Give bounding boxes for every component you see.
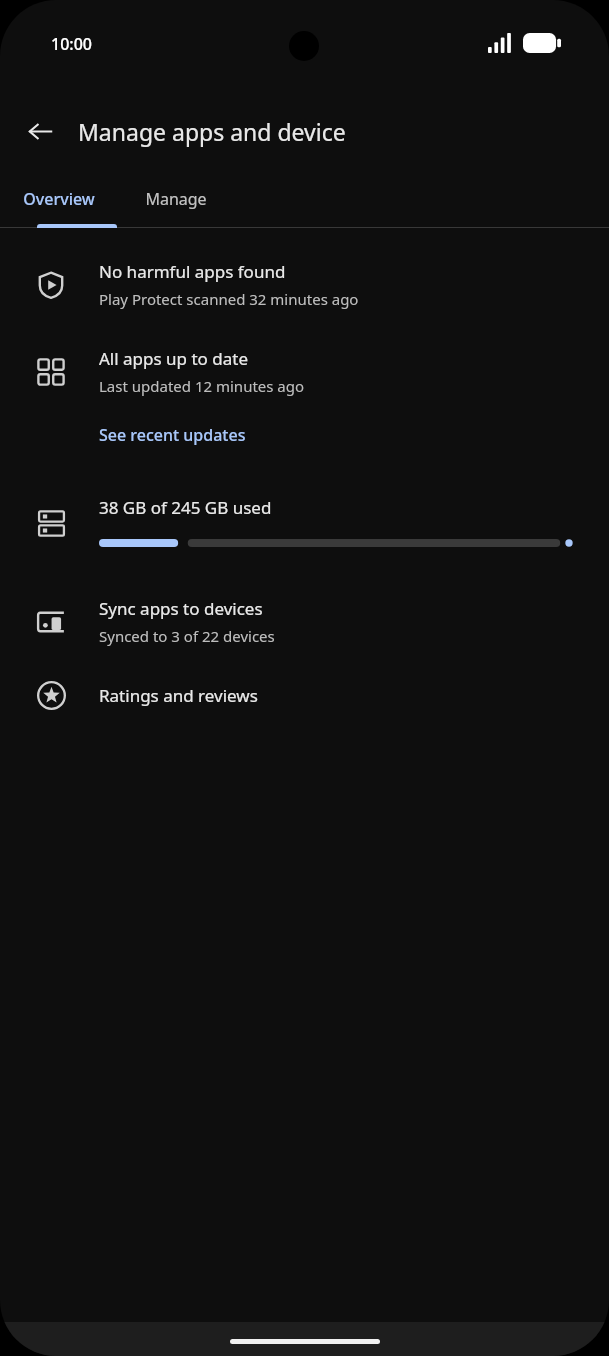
button[interactable]: Manage xyxy=(117,170,234,228)
button[interactable]: Overview xyxy=(0,170,117,228)
button[interactable]: Storage xyxy=(0,496,609,547)
button[interactable]: Updates xyxy=(0,347,609,396)
other: Storage xyxy=(28,500,74,546)
staticText: 38 GB of 245 GB used xyxy=(99,496,272,519)
staticText: Ratings and reviews xyxy=(99,684,258,707)
other: Updates xyxy=(28,349,74,395)
staticText: Overview xyxy=(23,188,95,210)
staticText: See recent updates xyxy=(99,424,246,446)
staticText: Manage xyxy=(145,188,207,210)
other: Play Protect xyxy=(28,262,74,308)
staticText: Play Protect scanned 32 minutes ago xyxy=(99,289,359,309)
button[interactable]: Back xyxy=(14,105,66,157)
other: Sync apps to devices xyxy=(28,599,74,645)
other: Ratings and reviews xyxy=(28,672,74,718)
staticText: Manage apps and device xyxy=(78,116,346,147)
staticText: No harmful apps found xyxy=(99,260,286,283)
staticText: 10:00 xyxy=(51,33,92,55)
button[interactable]: Sync apps to devices xyxy=(0,597,609,646)
staticText: Last updated 12 minutes ago xyxy=(99,376,305,396)
button[interactable]: Ratings and reviews xyxy=(0,668,609,722)
button[interactable]: Play Protect xyxy=(0,260,609,309)
staticText: All apps up to date xyxy=(99,347,249,370)
button[interactable]: See recent updates xyxy=(99,424,246,446)
staticText: Synced to 3 of 22 devices xyxy=(99,626,275,646)
staticText: Sync apps to devices xyxy=(99,597,263,620)
